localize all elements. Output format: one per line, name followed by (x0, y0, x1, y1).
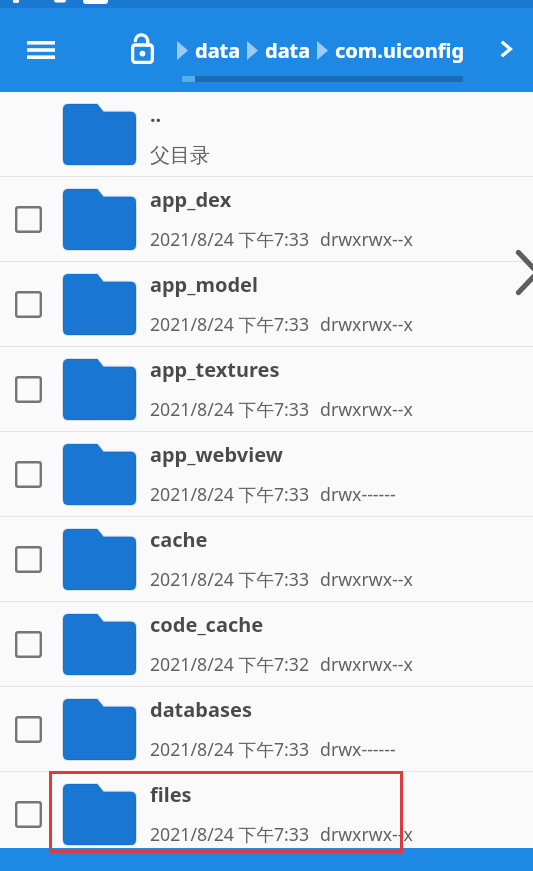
staticText: 2021/8/24 下午7:33 (150, 567, 310, 591)
staticText: databases (150, 696, 252, 723)
button[interactable]: data (247, 27, 317, 73)
staticText: drwxrwx--x (320, 567, 413, 591)
staticText: 2021/8/24 下午7:33 (150, 822, 310, 846)
button[interactable]: Menu (13, 26, 68, 74)
staticText: data (265, 37, 311, 64)
button[interactable]: Select app_dex (0, 177, 63, 261)
button[interactable]: Select files (0, 772, 63, 856)
button[interactable]: Select databases (0, 687, 63, 771)
staticText: drwxrwx--x (320, 397, 413, 421)
button[interactable]: Select code_cache (0, 602, 63, 686)
staticText: drwxrwx--x (320, 822, 413, 846)
button[interactable]: Select app_model (0, 262, 63, 346)
staticText: 2021/8/24 下午7:32 (150, 652, 310, 676)
button[interactable]: Select app_textures (0, 347, 533, 431)
button[interactable]: Select app_dex (0, 177, 533, 261)
button[interactable]: com.uiconfig (317, 27, 471, 73)
button[interactable]: Lock (119, 25, 166, 71)
staticText: .. (150, 101, 162, 128)
staticText: app_dex (150, 186, 232, 213)
staticText: files (150, 781, 192, 808)
staticText: app_webview (150, 441, 283, 468)
button[interactable]: Select cache (0, 517, 533, 601)
button[interactable]: Select app_model (0, 262, 533, 346)
button[interactable]: Select code_cache (0, 602, 533, 686)
button[interactable]: Select databases (0, 687, 533, 771)
staticText: drwxrwx--x (320, 227, 413, 251)
staticText: cache (150, 526, 208, 553)
button[interactable]: Select app_textures (0, 347, 63, 431)
button[interactable]: data (177, 27, 247, 73)
staticText: 父目录 (150, 143, 210, 168)
button[interactable]: Select app_webview (0, 432, 533, 516)
button[interactable]: Select app_webview (0, 432, 63, 516)
button[interactable]: Open panel (515, 249, 533, 296)
staticText: 2021/8/24 下午7:33 (150, 397, 310, 421)
staticText: drwx------ (320, 482, 396, 506)
staticText: app_textures (150, 356, 280, 383)
staticText: 2021/8/24 下午7:33 (150, 482, 310, 506)
staticText: data (195, 37, 241, 64)
staticText: drwx------ (320, 737, 396, 761)
staticText: com.uiconfig (335, 37, 465, 64)
staticText: 2021/8/24 下午7:33 (150, 312, 310, 336)
staticText: code_cache (150, 611, 264, 638)
staticText: 2021/8/24 下午7:33 (150, 227, 310, 251)
button[interactable]: Select cache (0, 517, 63, 601)
staticText: app_model (150, 271, 259, 298)
staticText: drwxrwx--x (320, 312, 413, 336)
staticText: 2021/8/24 下午7:33 (150, 737, 310, 761)
button[interactable]: .. (0, 92, 533, 176)
button[interactable]: Forward (483, 26, 529, 72)
button[interactable]: Select files (0, 772, 533, 856)
staticText: drwxrwx--x (320, 652, 413, 676)
